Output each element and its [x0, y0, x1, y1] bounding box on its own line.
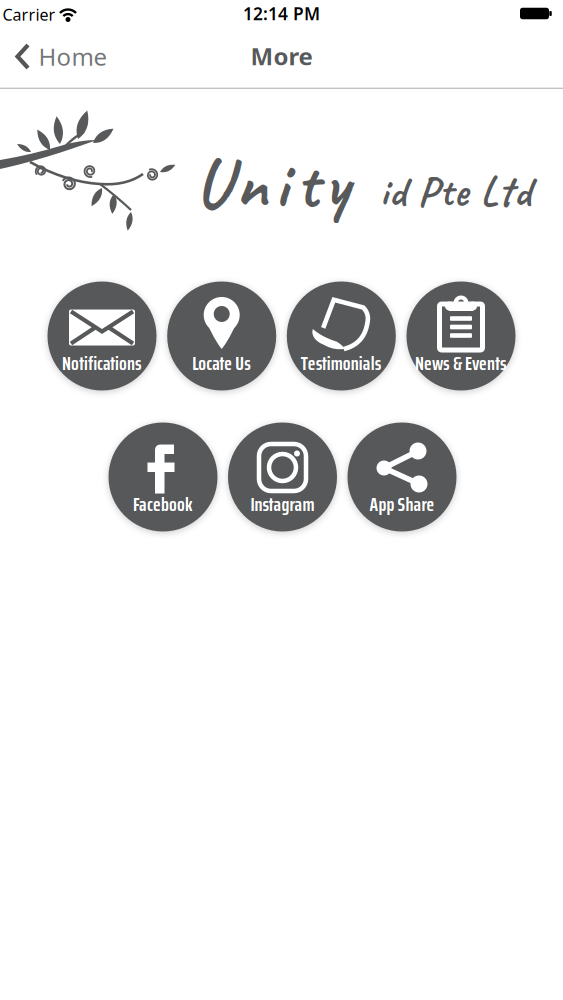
staticText: Locate Us — [192, 347, 251, 379]
button[interactable]: Notifications — [47, 281, 156, 390]
button[interactable]: App Share — [347, 422, 456, 531]
staticText: Instagram — [250, 488, 314, 520]
button[interactable]: Back — [14, 41, 107, 72]
button[interactable]: Testimonials — [287, 281, 396, 390]
staticText: Unity — [195, 140, 349, 227]
staticText: Facebook — [133, 488, 193, 520]
staticText: App Share — [369, 488, 434, 520]
button[interactable]: Facebook — [108, 422, 217, 531]
staticText: Notifications — [62, 347, 142, 379]
staticText: Home — [38, 41, 107, 72]
staticText: News & Events — [415, 347, 507, 379]
button[interactable]: Instagram — [228, 422, 337, 531]
button[interactable]: Locate Us — [167, 281, 276, 390]
staticText: Carrier — [2, 4, 55, 25]
staticText: More — [250, 40, 312, 72]
staticText: 12:14 PM — [243, 2, 320, 25]
staticText: Testimonials — [301, 347, 382, 379]
button[interactable]: News & Events — [406, 281, 515, 390]
staticText: id Pte Ltd — [379, 164, 530, 218]
